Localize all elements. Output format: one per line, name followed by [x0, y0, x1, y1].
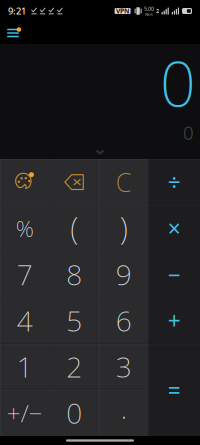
staticText: )	[120, 207, 128, 248]
button[interactable]: 6	[99, 297, 148, 344]
staticText: ÷	[168, 167, 181, 197]
button[interactable]: −	[148, 251, 200, 297]
button[interactable]: 1	[0, 344, 49, 390]
staticText: +	[168, 305, 181, 336]
button[interactable]	[0, 159, 49, 205]
staticText: =	[168, 375, 181, 405]
staticText: VPN	[116, 7, 129, 15]
button[interactable]: .	[99, 390, 148, 436]
staticText: 9:21	[8, 5, 26, 17]
staticText: 0	[183, 120, 194, 145]
staticText: 9	[116, 256, 132, 293]
staticText: +/−	[7, 397, 43, 429]
button[interactable]: +/−	[0, 390, 49, 436]
staticText: 1	[17, 348, 33, 385]
button[interactable]: 5	[49, 297, 99, 344]
button[interactable]: 8	[49, 251, 99, 297]
button[interactable]: Show history	[0, 145, 200, 159]
staticText: (	[70, 207, 78, 248]
staticText: C	[116, 165, 132, 199]
staticText: 4	[17, 302, 33, 339]
staticText: 2	[156, 7, 159, 15]
button[interactable]: 7	[0, 251, 49, 297]
staticText: 2	[66, 348, 82, 385]
staticText: 6	[116, 302, 132, 339]
button[interactable]: 9	[99, 251, 148, 297]
staticText: −	[168, 259, 181, 289]
button[interactable]: 0	[49, 390, 99, 436]
staticText: 0	[66, 394, 82, 431]
button[interactable]: C	[99, 159, 148, 205]
button[interactable]: 3	[99, 344, 148, 390]
button[interactable]: 2	[49, 344, 99, 390]
button[interactable]	[49, 159, 99, 205]
staticText: 0	[160, 41, 196, 124]
staticText: 7	[17, 256, 33, 293]
staticText: 3	[116, 348, 132, 385]
staticText: 8	[66, 256, 82, 293]
button[interactable]: +	[148, 297, 200, 344]
staticText: .	[121, 389, 127, 426]
staticText: 5.00	[144, 5, 154, 12]
staticText: 5	[66, 302, 82, 339]
button[interactable]: ÷	[148, 159, 200, 205]
button[interactable]: 4	[0, 297, 49, 344]
staticText: KB/s	[145, 12, 153, 17]
button[interactable]: )	[99, 205, 148, 251]
button[interactable]: %	[0, 205, 49, 251]
button[interactable]: Menu	[0, 22, 29, 44]
button[interactable]: (	[49, 205, 99, 251]
staticText: %	[16, 213, 34, 243]
staticText: ×	[168, 213, 181, 243]
button[interactable]: =	[148, 344, 200, 436]
button[interactable]: ×	[148, 205, 200, 251]
